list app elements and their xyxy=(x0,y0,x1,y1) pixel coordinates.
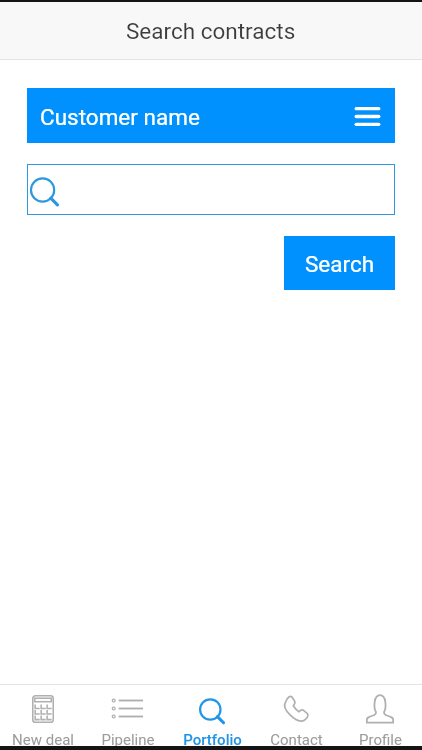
staticText: Portfolio xyxy=(183,731,242,746)
button[interactable]: Profile xyxy=(338,685,422,746)
button[interactable]: Search xyxy=(284,236,395,290)
staticText: Contact xyxy=(270,731,323,746)
button[interactable]: Search field xyxy=(27,164,395,215)
staticText: Search contracts xyxy=(126,18,296,44)
button[interactable]: Contact xyxy=(254,685,338,746)
button[interactable]: New deal xyxy=(0,685,85,746)
button[interactable]: Menu xyxy=(352,101,382,131)
staticText: Profile xyxy=(359,731,402,746)
staticText: Pipeline xyxy=(101,731,155,746)
staticText: Search xyxy=(305,251,375,277)
button[interactable]: Portfolio xyxy=(170,685,254,746)
staticText: New deal xyxy=(12,731,74,746)
button[interactable]: Customer name xyxy=(27,88,395,143)
button[interactable]: Pipeline xyxy=(85,685,170,746)
staticText: Customer name xyxy=(40,104,200,130)
